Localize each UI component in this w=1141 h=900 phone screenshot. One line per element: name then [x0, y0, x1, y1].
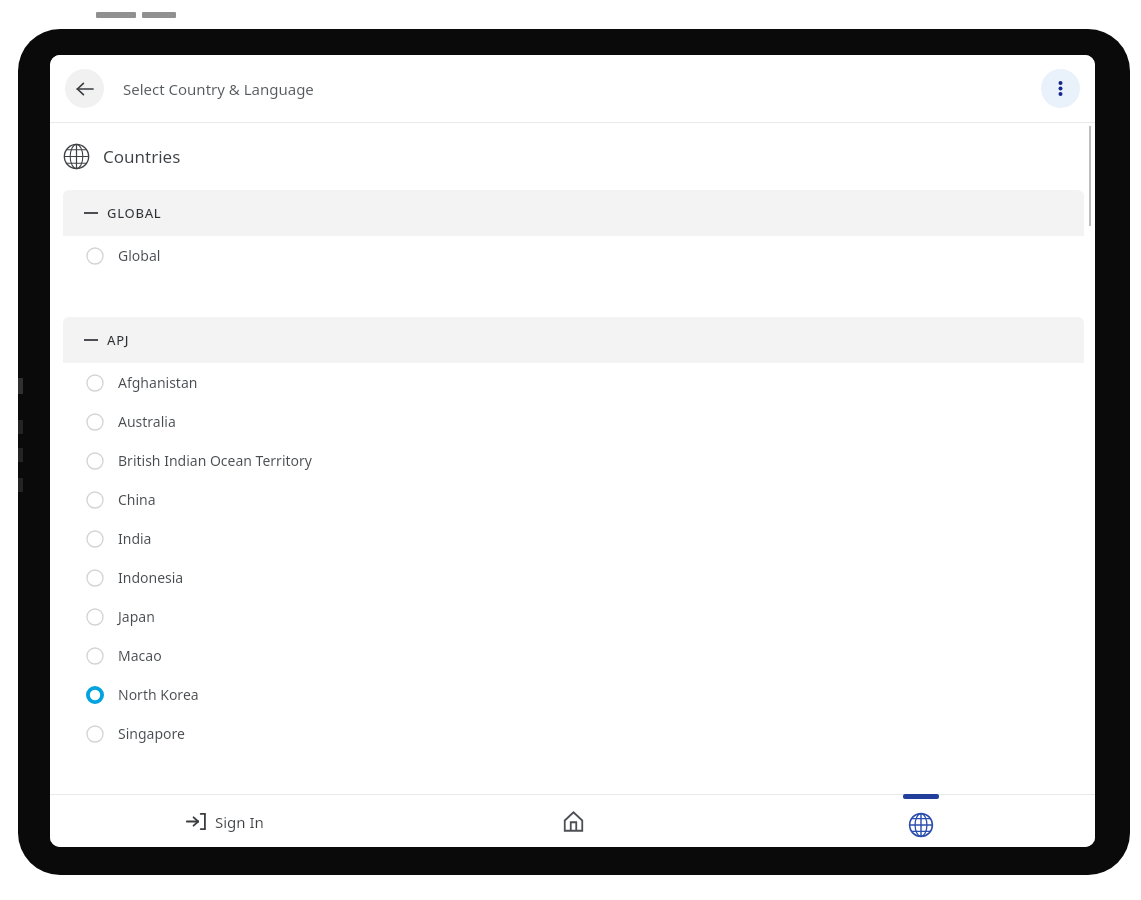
button[interactable]: North Korea — [63, 675, 1084, 714]
button[interactable]: India — [63, 519, 1084, 558]
button[interactable]: British Indian Ocean Territory — [63, 441, 1084, 480]
button[interactable]: Macao — [63, 636, 1084, 675]
staticText: North Korea — [118, 685, 199, 704]
button[interactable]: Afghanistan — [63, 363, 1084, 402]
staticText: Australia — [118, 412, 176, 431]
staticText: Sign In — [215, 812, 264, 832]
staticText: Singapore — [118, 724, 185, 743]
staticText: Macao — [118, 646, 162, 665]
button[interactable]: Back — [65, 69, 104, 108]
staticText: Global — [118, 246, 161, 265]
button[interactable]: Indonesia — [63, 558, 1084, 597]
staticText: Afghanistan — [118, 373, 198, 392]
button[interactable]: Home — [399, 795, 747, 847]
staticText: APJ — [107, 331, 130, 349]
button[interactable]: Singapore — [63, 714, 1084, 753]
button[interactable]: Country and language — [747, 795, 1095, 847]
button[interactable]: Japan — [63, 597, 1084, 636]
staticText: China — [118, 490, 156, 509]
staticText: Indonesia — [118, 568, 184, 587]
staticText: Countries — [103, 145, 181, 168]
button[interactable]: Sign In — [50, 795, 399, 847]
button[interactable]: More options — [1041, 69, 1080, 108]
staticText: GLOBAL — [107, 204, 162, 222]
button[interactable]: Global — [63, 236, 1084, 275]
staticText: Select Country & Language — [123, 79, 314, 99]
staticText: Japan — [118, 607, 155, 626]
staticText: India — [118, 529, 152, 548]
button[interactable]: China — [63, 480, 1084, 519]
button[interactable]: Australia — [63, 402, 1084, 441]
staticText: British Indian Ocean Territory — [118, 451, 312, 470]
